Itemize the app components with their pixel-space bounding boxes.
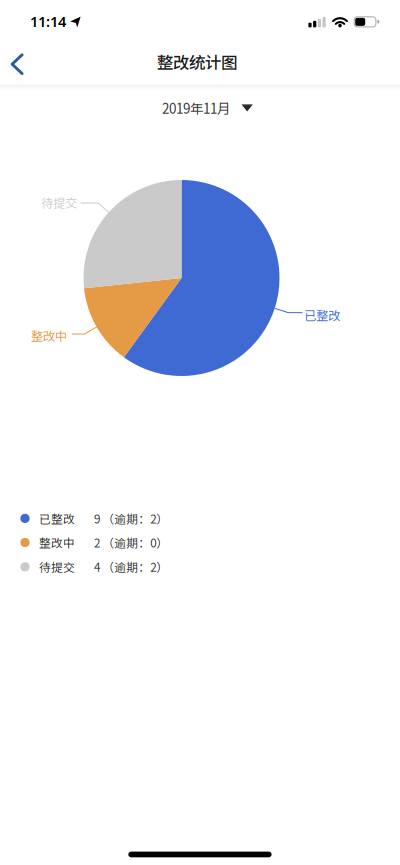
staticText: 待提交 <box>41 194 77 211</box>
staticText: 待提交 <box>39 558 75 575</box>
staticText: 11:14 <box>30 11 66 31</box>
staticText: 已整改 <box>304 306 340 324</box>
staticText: 9 <box>94 510 100 527</box>
staticText: 已整改 <box>39 510 75 527</box>
staticText: 整改中 <box>31 327 67 344</box>
staticText: （逾期：2） <box>102 510 168 527</box>
staticText: 整改统计图 <box>157 50 237 73</box>
staticText: （逾期：2） <box>102 558 168 575</box>
button[interactable]: 2019年11月 <box>152 90 263 126</box>
button[interactable]: Back <box>0 42 35 86</box>
staticText: 2019年11月 <box>162 98 230 118</box>
staticText: （逾期：0） <box>102 534 168 551</box>
staticText: 4 <box>94 558 100 575</box>
staticText: 整改中 <box>39 534 75 551</box>
staticText: 2 <box>94 534 100 551</box>
